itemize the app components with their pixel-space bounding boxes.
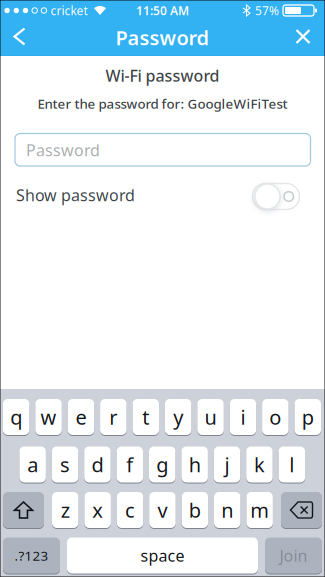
staticText: Password (26, 139, 100, 161)
staticText: Enter the password for: GoogleWiFiTest (37, 95, 287, 112)
staticText: h (189, 451, 201, 478)
button[interactable]: Show password (252, 183, 299, 209)
staticText: p (302, 404, 314, 430)
button[interactable]: s (52, 446, 78, 482)
button[interactable]: Close (288, 22, 317, 51)
staticText: q (10, 404, 22, 430)
button[interactable]: space (67, 537, 258, 573)
staticText: s (60, 451, 70, 478)
staticText: Show password (16, 184, 135, 206)
button[interactable]: Back (6, 20, 32, 52)
button[interactable]: z (52, 492, 78, 528)
button[interactable]: .?123 (3, 537, 60, 573)
staticText: Wi-Fi password (105, 65, 219, 86)
staticText: n (221, 497, 233, 523)
staticText: o (269, 404, 281, 430)
staticText: i (240, 404, 245, 430)
staticText: j (224, 451, 229, 478)
button[interactable]: Password (15, 133, 310, 166)
staticText: d (91, 451, 103, 478)
staticText: y (173, 404, 183, 430)
staticText: b (189, 497, 201, 523)
staticText: v (157, 497, 167, 523)
button[interactable]: y (165, 399, 191, 435)
button[interactable]: l (279, 446, 305, 482)
button[interactable]: Shift (3, 492, 44, 528)
button[interactable]: t (132, 399, 159, 435)
staticText: z (61, 497, 70, 523)
staticText: l (289, 451, 294, 478)
staticText: t (142, 404, 149, 430)
staticText: c (125, 497, 135, 523)
button[interactable]: x (84, 492, 111, 528)
button[interactable]: g (149, 446, 175, 482)
button[interactable]: i (230, 399, 256, 435)
button[interactable]: v (149, 492, 176, 528)
staticText: space (140, 545, 184, 566)
button[interactable]: j (214, 446, 240, 482)
staticText: g (156, 451, 168, 478)
button[interactable]: o (262, 399, 289, 435)
button[interactable]: e (68, 399, 94, 435)
button[interactable]: h (181, 446, 208, 482)
staticText: x (92, 497, 103, 523)
button[interactable]: f (117, 446, 143, 482)
staticText: cricket (50, 2, 87, 18)
button[interactable]: Delete (281, 492, 322, 528)
button[interactable]: b (182, 492, 208, 528)
staticText: k (254, 451, 265, 478)
staticText: .?123 (14, 547, 48, 564)
button[interactable]: r (100, 399, 127, 435)
staticText: u (204, 404, 216, 430)
button[interactable]: c (117, 492, 143, 528)
button[interactable]: Join (265, 537, 322, 573)
staticText: r (109, 404, 117, 430)
button[interactable]: p (294, 399, 321, 435)
staticText: Join (279, 545, 307, 566)
staticText: Password (115, 24, 209, 51)
staticText: w (40, 404, 56, 430)
staticText: 11:50 AM (136, 2, 189, 18)
button[interactable]: k (246, 446, 273, 482)
button[interactable]: d (84, 446, 111, 482)
button[interactable]: n (214, 492, 240, 528)
button[interactable]: w (35, 399, 62, 435)
button[interactable]: q (3, 399, 29, 435)
staticText: 57% (255, 2, 279, 18)
staticText: e (75, 404, 86, 430)
button[interactable]: m (246, 492, 273, 528)
staticText: a (27, 451, 38, 478)
button[interactable]: u (197, 399, 224, 435)
staticText: f (126, 451, 133, 478)
staticText: m (250, 497, 269, 523)
button[interactable]: a (19, 446, 46, 482)
